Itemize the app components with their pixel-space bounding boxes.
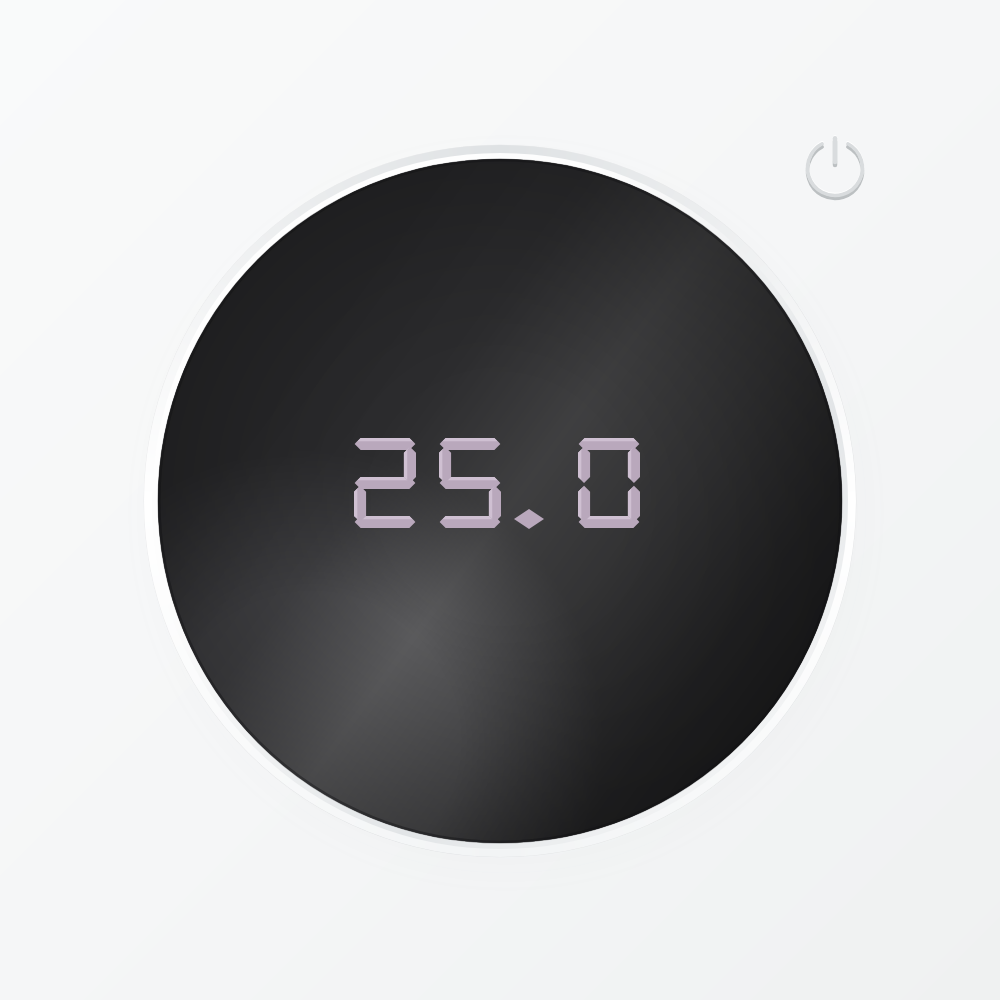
button[interactable]: Thermostat dial, 25.0 degrees (0, 0, 1000, 1000)
button[interactable]: Power (779, 112, 891, 224)
